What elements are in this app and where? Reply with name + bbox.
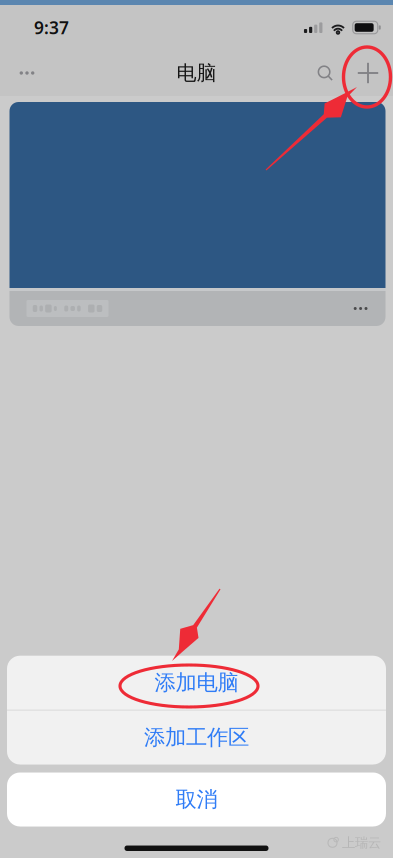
button[interactable]: Search <box>305 51 345 95</box>
staticText: 电脑 <box>176 61 216 85</box>
staticText: 取消 <box>175 786 217 813</box>
staticText: 9:37 <box>34 16 69 39</box>
button[interactable]: Add <box>345 51 391 95</box>
button[interactable]: More options <box>5 51 49 95</box>
button[interactable]: 取消 <box>7 772 386 826</box>
button[interactable]: 添加电脑 <box>7 656 386 710</box>
staticText: 添加电脑 <box>154 670 238 696</box>
button[interactable]: Remote computer <box>9 102 385 326</box>
staticText: 添加工作区 <box>144 724 249 751</box>
staticText: 上瑞云 <box>342 835 381 851</box>
button[interactable]: 添加工作区 <box>7 710 386 764</box>
